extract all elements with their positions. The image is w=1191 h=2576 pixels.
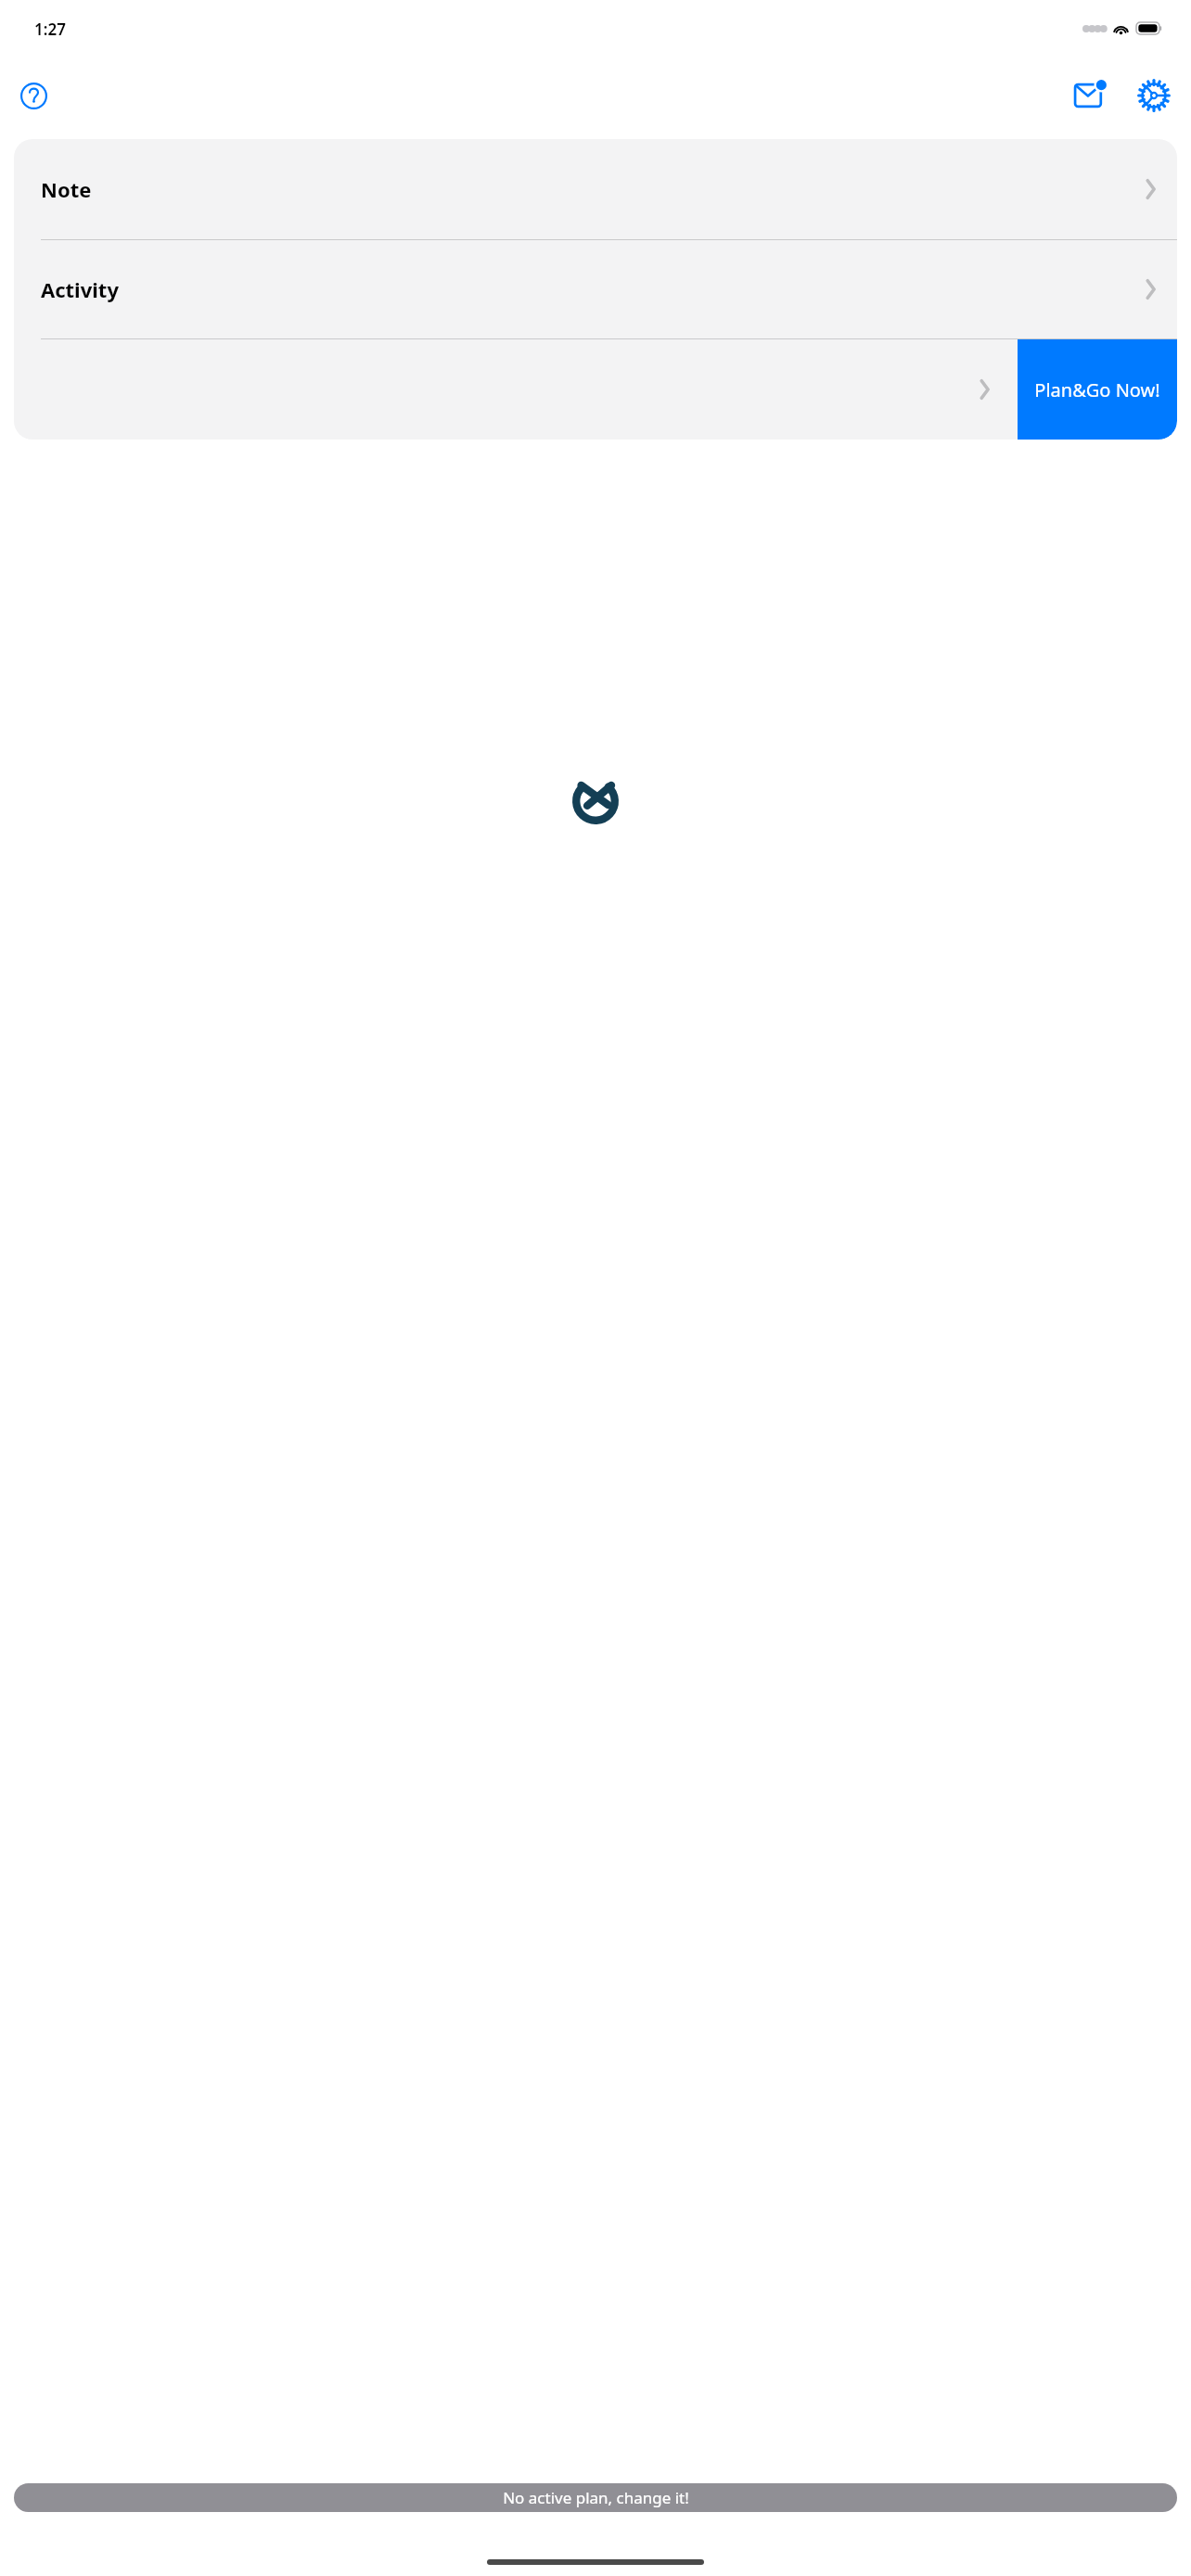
button[interactable]: Plan&Go Now! xyxy=(14,339,1177,440)
staticText: 1:27 xyxy=(34,19,66,40)
button[interactable]: Plan&Go Now! xyxy=(1018,339,1177,440)
staticText: Plan&Go Now! xyxy=(1034,377,1160,402)
staticText: No active plan, change it! xyxy=(503,2487,689,2508)
button[interactable]: Settings xyxy=(1130,71,1178,120)
button[interactable]: Activity xyxy=(14,240,1177,338)
button[interactable]: Help xyxy=(13,75,54,116)
button[interactable]: Messages xyxy=(1067,71,1115,120)
button[interactable]: No active plan, change it! xyxy=(14,2483,1177,2512)
staticText: Activity xyxy=(41,275,119,303)
staticText: Note xyxy=(41,175,92,203)
button[interactable]: Note xyxy=(14,139,1177,239)
